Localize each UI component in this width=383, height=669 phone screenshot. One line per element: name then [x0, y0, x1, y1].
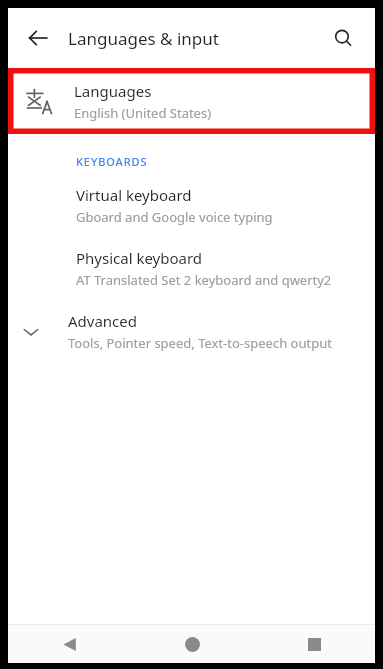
- staticText: Virtual keyboard: [76, 185, 192, 205]
- button[interactable]: Back: [8, 625, 131, 663]
- button[interactable]: Advanced: [8, 311, 375, 352]
- staticText: Gboard and Google voice typing: [76, 208, 273, 226]
- staticText: Languages & input: [68, 27, 219, 50]
- staticText: KEYBOARDS: [76, 154, 148, 169]
- staticText: Tools, Pointer speed, Text-to-speech out…: [68, 334, 332, 352]
- staticText: Physical keyboard: [76, 248, 203, 268]
- button[interactable]: Physical keyboard: [8, 248, 375, 289]
- staticText: AT Translated Set 2 keyboard and qwerty2: [76, 271, 332, 289]
- staticText: Advanced: [68, 311, 138, 331]
- button[interactable]: Languages: [14, 74, 369, 128]
- button[interactable]: Back: [16, 16, 60, 60]
- staticText: Languages: [74, 81, 152, 101]
- button[interactable]: Recent apps: [253, 625, 375, 663]
- button[interactable]: Home: [131, 625, 253, 663]
- staticText: English (United States): [74, 104, 212, 122]
- button[interactable]: Search: [321, 16, 365, 60]
- button[interactable]: Virtual keyboard: [8, 185, 375, 226]
